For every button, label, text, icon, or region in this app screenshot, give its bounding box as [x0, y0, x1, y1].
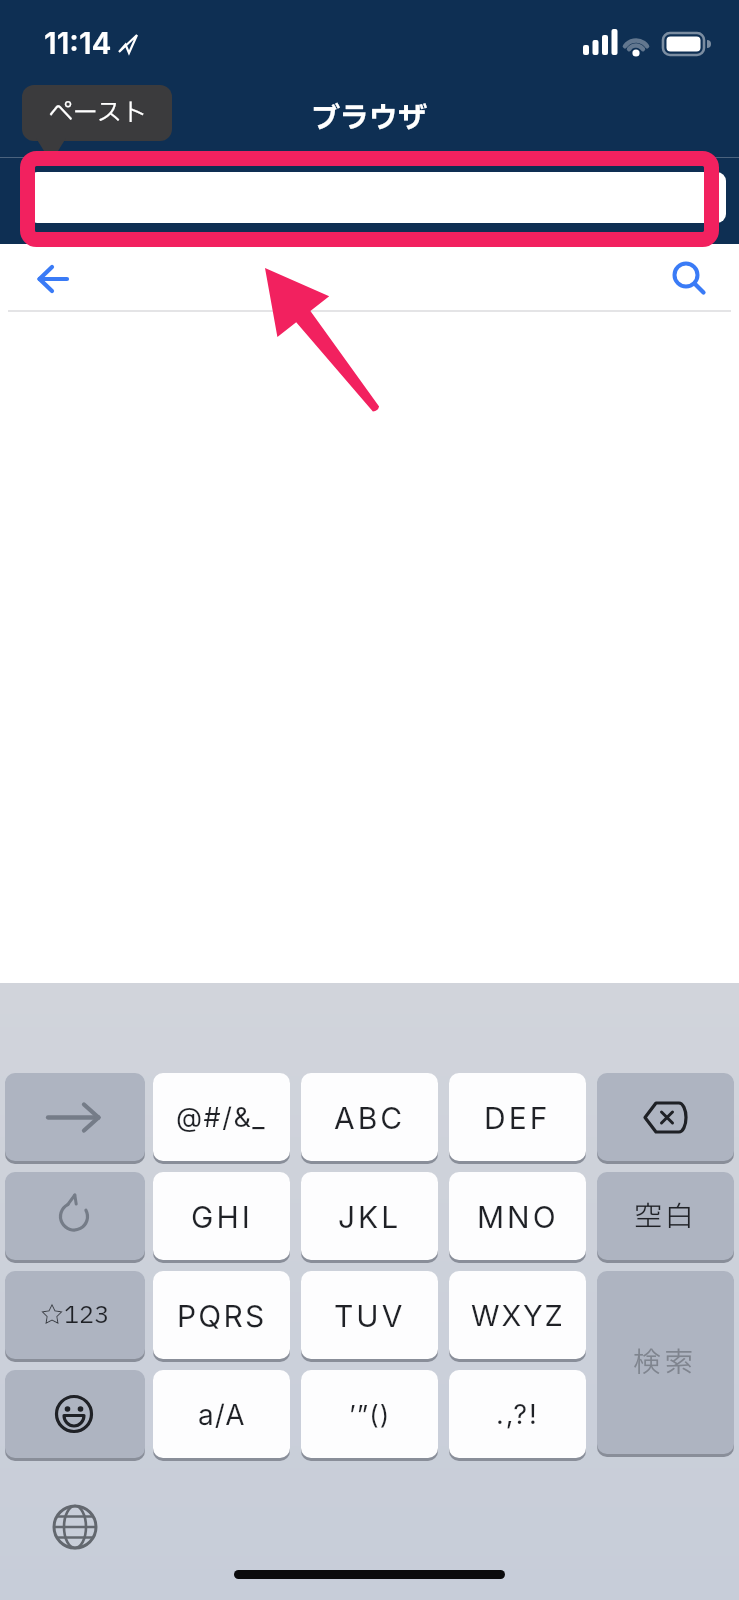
staticText: PQRS: [177, 1298, 267, 1334]
button[interactable]: JKL: [301, 1172, 438, 1261]
staticText: ブラウザ: [311, 97, 428, 140]
staticText: GHI: [191, 1199, 253, 1235]
staticText: JKL: [338, 1199, 402, 1235]
button[interactable]: TUV: [301, 1271, 438, 1360]
staticText: DEF: [484, 1100, 551, 1136]
button[interactable]: a/A: [153, 1370, 290, 1459]
button[interactable]: 検索: [597, 1271, 734, 1455]
staticText: .,?!: [496, 1398, 539, 1431]
button[interactable]: DEF: [449, 1073, 586, 1162]
staticText: MNO: [477, 1199, 559, 1235]
staticText: ☆123: [40, 1298, 110, 1334]
button[interactable]: [5, 1370, 145, 1459]
staticText: ペースト: [48, 95, 147, 132]
staticText: 検索: [633, 1342, 698, 1384]
button[interactable]: [662, 253, 714, 303]
staticText: a/A: [198, 1398, 246, 1432]
button[interactable]: ☆123: [5, 1271, 145, 1360]
staticText: WXYZ: [471, 1298, 565, 1333]
button[interactable]: PQRS: [153, 1271, 290, 1360]
button[interactable]: .,?!: [449, 1370, 586, 1459]
staticText: TUV: [334, 1298, 406, 1334]
button[interactable]: MNO: [449, 1172, 586, 1261]
button[interactable]: 空白: [597, 1172, 734, 1261]
button[interactable]: ’”(): [301, 1370, 438, 1459]
button[interactable]: WXYZ: [449, 1271, 586, 1360]
button[interactable]: ペースト: [22, 85, 172, 141]
staticText: @#/&_: [176, 1101, 267, 1134]
button[interactable]: [28, 255, 78, 303]
staticText: 11:14: [44, 25, 112, 61]
button[interactable]: ABC: [301, 1073, 438, 1162]
button[interactable]: @#/&_: [153, 1073, 290, 1162]
button[interactable]: [5, 1073, 145, 1162]
button[interactable]: [28, 172, 726, 223]
staticText: ABC: [334, 1100, 406, 1136]
staticText: ’”(): [349, 1399, 391, 1430]
button[interactable]: [5, 1172, 145, 1261]
button[interactable]: [597, 1073, 734, 1162]
staticText: 空白: [634, 1196, 697, 1238]
button[interactable]: GHI: [153, 1172, 290, 1261]
